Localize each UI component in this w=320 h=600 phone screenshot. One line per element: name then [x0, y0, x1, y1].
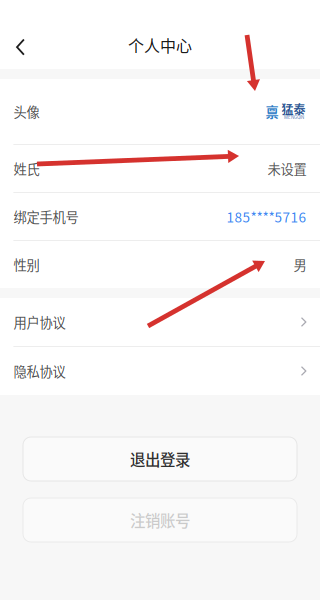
staticText: 隐私协议 [13, 361, 65, 381]
staticText: 个人中心 [128, 33, 192, 57]
staticText: MENGQIN [284, 115, 304, 120]
staticText: 头像 [13, 102, 39, 121]
staticText: 注销账号 [130, 509, 190, 531]
button[interactable]: Back [0, 23, 44, 67]
staticText: 未设置 [267, 159, 306, 178]
button[interactable]: 退出登录 [23, 437, 297, 481]
button[interactable]: 绑定手机号 [0, 193, 320, 240]
staticText: 用户协议 [13, 312, 65, 332]
staticText: 性别 [13, 255, 39, 274]
button[interactable]: 头像 [0, 79, 320, 144]
button[interactable]: 性别 [0, 241, 320, 288]
staticText: 绑定手机号 [13, 207, 78, 226]
button[interactable]: 注销账号 [23, 498, 297, 542]
button[interactable]: 隐私协议 [0, 347, 320, 395]
staticText: 退出登录 [130, 448, 190, 470]
staticText: 猛泰 [281, 100, 305, 118]
button[interactable]: 用户协议 [0, 298, 320, 346]
staticText: 禀 [265, 102, 278, 121]
button[interactable]: 姓氏 [0, 145, 320, 192]
staticText: 姓氏 [13, 159, 39, 178]
staticText: 男 [293, 255, 306, 274]
staticText: 185****5716 [226, 207, 306, 226]
